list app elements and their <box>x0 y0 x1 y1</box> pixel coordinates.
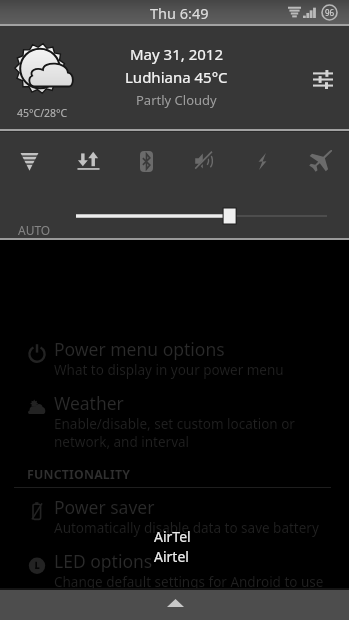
button[interactable]: LED options <box>0 544 349 596</box>
staticText: Automatically disable data to save batte… <box>54 519 319 537</box>
button[interactable]: Close quick settings <box>0 590 349 620</box>
staticText: Change default settings for Android to u… <box>54 573 324 591</box>
staticText: Enable/disable, set custom location or <box>54 415 295 433</box>
staticText: 45°C/28°C <box>17 106 68 120</box>
staticText: AUTO <box>18 222 51 238</box>
button[interactable]: Weather <box>0 386 349 448</box>
button[interactable]: Power menu options <box>0 332 349 384</box>
staticText: AirTel <box>154 527 191 546</box>
staticText: LED options <box>54 549 153 573</box>
staticText: 96 <box>325 7 335 18</box>
button[interactable]: Mobile data <box>59 134 117 188</box>
button[interactable]: Power saver <box>0 490 349 542</box>
button[interactable]: Quick settings <box>308 64 338 94</box>
button[interactable]: Wi-Fi <box>0 134 59 188</box>
staticText: Power saver <box>54 495 155 519</box>
staticText: network, and interval <box>54 433 190 451</box>
button[interactable]: Sound off <box>175 134 233 188</box>
staticText: May 31, 2012 <box>130 44 223 64</box>
button[interactable]: Bluetooth <box>117 134 175 188</box>
staticText: FUNCTIONALITY <box>27 466 131 483</box>
staticText: Power menu options <box>54 337 225 361</box>
staticText: Partly Cloudy <box>136 91 217 109</box>
staticText: What to display in your power menu <box>54 361 284 379</box>
staticText: Thu 6:49 <box>150 3 209 23</box>
staticText: Airtel <box>154 547 189 566</box>
button[interactable]: Torch <box>233 134 291 188</box>
button[interactable]: Brightness <box>70 203 335 229</box>
staticText: Weather <box>54 391 124 415</box>
button[interactable]: Airplane mode <box>291 134 349 188</box>
staticText: Ludhiana 45°C <box>125 67 228 87</box>
